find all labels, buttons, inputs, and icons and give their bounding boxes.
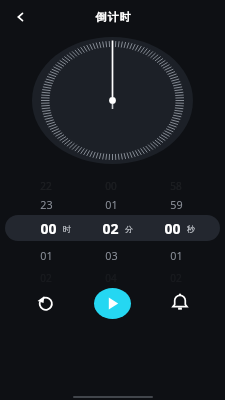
- button[interactable]: [94, 288, 131, 319]
- staticText: 01: [170, 248, 183, 263]
- staticText: 02: [170, 271, 182, 285]
- staticText: 04: [105, 271, 117, 285]
- staticText: 分: [125, 224, 133, 234]
- staticText: 倒计时: [95, 10, 132, 24]
- staticText: 00: [164, 219, 181, 238]
- staticText: 02: [40, 271, 52, 285]
- button[interactable]: [5, 215, 220, 241]
- staticText: 02: [102, 219, 119, 238]
- staticText: 01: [40, 248, 53, 263]
- staticText: 时: [63, 224, 71, 234]
- button[interactable]: [31, 289, 59, 317]
- button[interactable]: [166, 289, 194, 317]
- staticText: 58: [170, 179, 182, 193]
- staticText: 00: [40, 219, 57, 238]
- staticText: 22: [40, 179, 52, 193]
- staticText: 01: [105, 197, 118, 212]
- staticText: 23: [40, 197, 53, 212]
- staticText: 59: [170, 197, 183, 212]
- staticText: 03: [105, 248, 118, 263]
- staticText: 秒: [187, 224, 195, 234]
- staticText: 00: [105, 179, 117, 193]
- button[interactable]: [8, 5, 32, 29]
